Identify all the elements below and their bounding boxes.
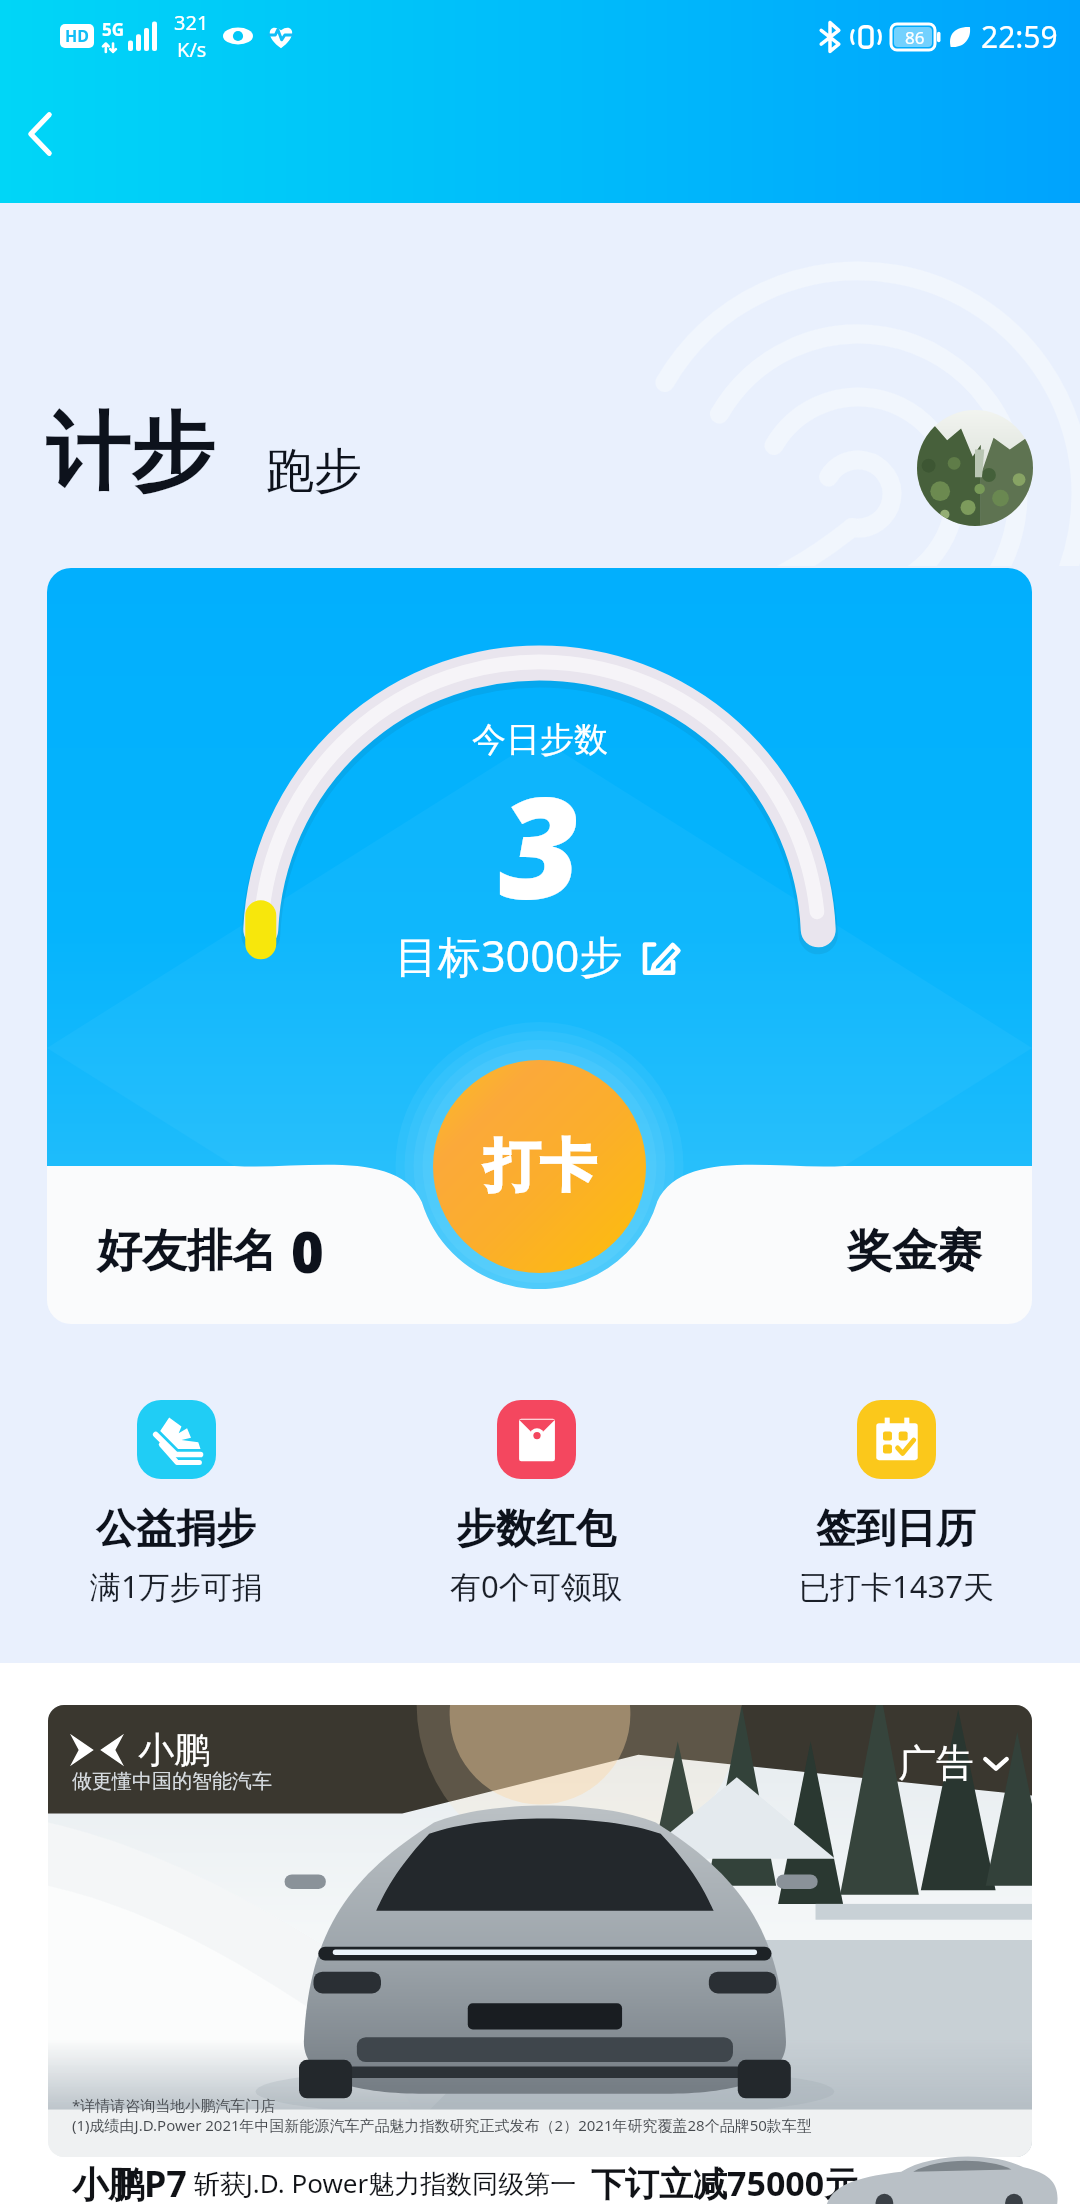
staticText: 奖金赛 — [847, 1223, 982, 1280]
staticText: 5G — [102, 18, 125, 41]
staticText: 3 — [499, 749, 581, 940]
staticText: 跑步 — [266, 441, 362, 501]
button[interactable]: 跑步 — [266, 446, 362, 506]
staticText: 下订立减75000元 — [591, 2160, 859, 2204]
button[interactable]: 广告 — [898, 1739, 1010, 1787]
staticText: K/s — [177, 36, 207, 63]
staticText: 斩获J.D. Power魅力指数同级第一 — [187, 2165, 577, 2201]
button[interactable]: Back — [4, 98, 76, 170]
staticText: 321 — [174, 9, 209, 36]
staticText: 满1万步可捐 — [90, 1565, 263, 1607]
button[interactable]: Step red packet — [356, 1400, 716, 1607]
staticText: 好友排名 — [97, 1223, 277, 1280]
button[interactable]: Donate steps — [0, 1400, 356, 1607]
staticText: 小鹏P7 — [72, 2159, 187, 2204]
staticText: 打卡 — [484, 1131, 596, 1202]
button[interactable]: Check-in calendar — [716, 1400, 1076, 1607]
staticText: HD — [65, 25, 89, 47]
staticText: 签到日历 — [816, 1503, 976, 1553]
staticText: 0 — [291, 1213, 324, 1289]
staticText: 目标3000步 — [395, 926, 623, 985]
staticText: 86 — [905, 26, 925, 49]
staticText: 今日步数 — [472, 718, 608, 761]
button[interactable]: 目标3000步 — [395, 926, 685, 985]
staticText: 有0个可领取 — [450, 1565, 623, 1607]
button[interactable]: 好友排名 — [97, 1213, 324, 1289]
staticText: 计步 — [46, 400, 214, 506]
button[interactable]: Profile photo — [917, 410, 1033, 526]
staticText: 公益捐步 — [96, 1503, 256, 1553]
staticText: *详情请咨询当地小鹏汽车门店 — [72, 2095, 276, 2115]
staticText: 小鹏 — [138, 1727, 210, 1772]
button[interactable]: 打卡 — [433, 1060, 646, 1273]
staticText: 广告 — [898, 1739, 974, 1787]
staticText: 22:59 — [981, 16, 1058, 57]
staticText: 步数红包 — [456, 1503, 616, 1553]
staticText: 已打卡1437天 — [799, 1565, 994, 1607]
button[interactable]: 小鹏 — [48, 1705, 1032, 2157]
button[interactable]: 奖金赛 — [847, 1223, 982, 1280]
staticText: (1)成绩由J.D.Power 2021年中国新能源汽车产品魅力指数研究正式发布… — [72, 2115, 812, 2135]
staticText: 做更懂中国的智能汽车 — [72, 1769, 272, 1794]
